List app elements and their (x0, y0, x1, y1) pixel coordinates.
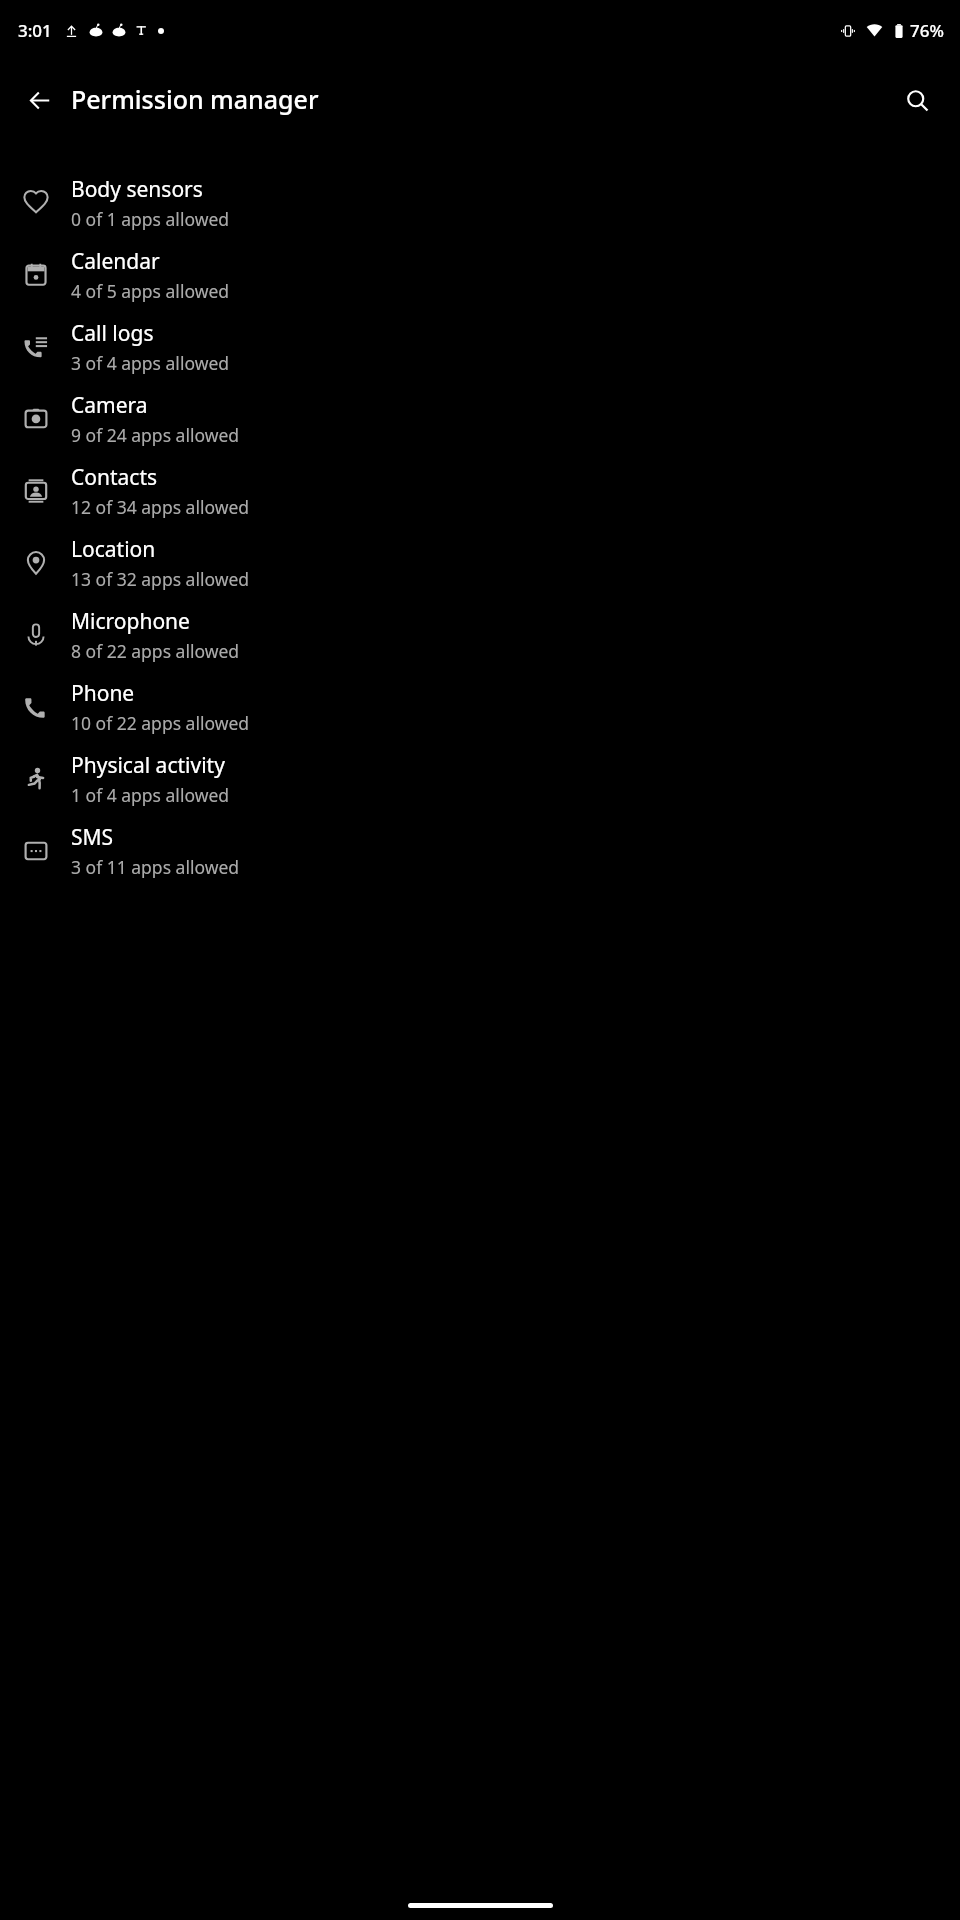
staticText: 10 of 22 apps allowed (71, 711, 250, 735)
staticText: Body sensors (71, 175, 203, 204)
staticText: 12 of 34 apps allowed (71, 495, 250, 519)
staticText: 3 of 11 apps allowed (71, 855, 240, 879)
staticText: 3:01 (18, 19, 52, 42)
staticText: Call logs (71, 319, 154, 348)
staticText: 76% (910, 19, 944, 42)
button[interactable]: Search (890, 73, 944, 127)
staticText: 0 of 1 apps allowed (71, 207, 230, 231)
staticText: Contacts (71, 463, 158, 492)
staticText: Calendar (71, 247, 160, 276)
button[interactable]: Microphone (0, 599, 960, 671)
button[interactable]: Body sensors (0, 167, 960, 239)
button[interactable]: Phone (0, 671, 960, 743)
button[interactable]: Location (0, 527, 960, 599)
button[interactable]: Physical activity (0, 743, 960, 815)
staticText: 1 of 4 apps allowed (71, 783, 230, 807)
button[interactable]: Camera (0, 383, 960, 455)
button[interactable]: Back (12, 72, 68, 128)
staticText: Microphone (71, 607, 190, 636)
button[interactable]: Call logs (0, 311, 960, 383)
staticText: SMS (71, 823, 114, 852)
staticText: 13 of 32 apps allowed (71, 567, 250, 591)
staticText: 3 of 4 apps allowed (71, 351, 230, 375)
staticText: Camera (71, 391, 148, 420)
staticText: Phone (71, 679, 135, 708)
button[interactable]: SMS (0, 815, 960, 887)
button[interactable]: Contacts (0, 455, 960, 527)
staticText: 9 of 24 apps allowed (71, 423, 240, 447)
staticText: Permission manager (71, 82, 319, 116)
staticText: Physical activity (71, 751, 225, 780)
staticText: Location (71, 535, 156, 564)
staticText: 8 of 22 apps allowed (71, 639, 240, 663)
staticText: 4 of 5 apps allowed (71, 279, 230, 303)
button[interactable]: Calendar (0, 239, 960, 311)
